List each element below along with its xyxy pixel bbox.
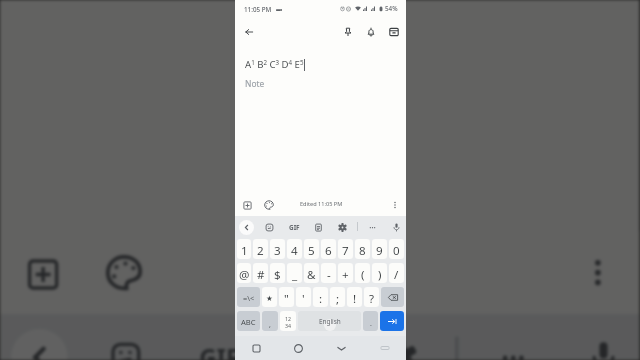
staticText: @	[239, 267, 250, 283]
button[interactable]: /	[389, 263, 404, 283]
staticText: 3	[274, 243, 281, 259]
button[interactable]: =\<	[237, 287, 260, 307]
button[interactable]: Archive	[382, 22, 405, 42]
staticText: #	[257, 267, 265, 283]
button[interactable]: :	[313, 287, 328, 307]
button[interactable]: .	[363, 311, 378, 331]
button[interactable]: (	[355, 263, 370, 283]
staticText: !	[353, 291, 357, 307]
button[interactable]: @	[237, 263, 251, 283]
button[interactable]: 0	[389, 239, 404, 259]
button[interactable]: 3	[270, 239, 285, 259]
button[interactable]: ★	[262, 287, 277, 307]
button[interactable]: Reminder	[359, 22, 382, 42]
button[interactable]: 6	[321, 239, 336, 259]
button[interactable]: Back	[241, 24, 257, 40]
button[interactable]: Add	[239, 197, 255, 213]
button[interactable]: !	[347, 287, 362, 307]
button[interactable]: Backspace	[381, 287, 404, 307]
button[interactable]: More	[481, 325, 541, 360]
button[interactable]: Home	[277, 336, 320, 360]
button[interactable]: Clipboard	[310, 219, 326, 235]
button[interactable]: Clipboard	[278, 325, 338, 360]
button[interactable]: ABC	[237, 311, 260, 331]
staticText: 1	[241, 243, 248, 259]
staticText: )	[378, 267, 382, 283]
staticText: Edited 11:05 PM	[300, 200, 343, 208]
button[interactable]: '	[296, 287, 311, 307]
staticText: "	[284, 291, 289, 307]
staticText: (	[361, 267, 365, 283]
button[interactable]: Colour	[261, 197, 277, 213]
button[interactable]: Switch keyboard	[363, 336, 406, 360]
staticText: $	[274, 267, 281, 283]
button[interactable]: Settings	[334, 219, 350, 235]
staticText: +	[342, 267, 349, 283]
staticText: 5	[308, 243, 315, 259]
button[interactable]: $	[270, 263, 285, 283]
button[interactable]: More	[364, 219, 380, 235]
button[interactable]: "	[279, 287, 294, 307]
staticText: _	[292, 267, 298, 283]
staticText: ABC	[241, 317, 256, 327]
button[interactable]: )	[372, 263, 387, 283]
staticText: GIF	[289, 223, 300, 232]
staticText: 0	[393, 243, 400, 259]
button[interactable]: Colour	[94, 242, 154, 303]
button[interactable]: Emoji	[94, 325, 154, 360]
staticText: 12	[285, 315, 291, 322]
button[interactable]: 12	[280, 311, 296, 331]
button[interactable]: Pin	[336, 22, 359, 42]
button[interactable]: Enter	[380, 311, 404, 331]
button[interactable]: Voice input	[571, 325, 632, 360]
button[interactable]: Hide keyboard	[320, 336, 363, 360]
staticText: '	[302, 291, 305, 307]
button[interactable]: #	[253, 263, 268, 283]
button[interactable]: -	[321, 263, 336, 283]
button[interactable]: +	[338, 263, 353, 283]
staticText: 34	[285, 322, 291, 329]
button[interactable]: Settings	[368, 325, 429, 360]
staticText: Edited 11:05 PM	[241, 254, 402, 284]
staticText: .	[370, 319, 372, 329]
button[interactable]: 2	[253, 239, 268, 259]
button[interactable]: ;	[330, 287, 345, 307]
staticText: English	[319, 317, 341, 326]
button[interactable]: English	[298, 311, 361, 331]
button[interactable]: Back	[239, 220, 254, 235]
staticText: 8	[359, 243, 366, 259]
button[interactable]: GIF	[286, 219, 302, 235]
staticText: ;	[336, 291, 340, 307]
staticText: 4	[291, 243, 298, 259]
button[interactable]: More options	[387, 197, 403, 213]
staticText: GIF	[199, 340, 241, 360]
staticText: ★	[266, 294, 273, 303]
button[interactable]: Recents	[235, 336, 277, 360]
button[interactable]: 1	[237, 239, 251, 259]
staticText: ,	[269, 320, 271, 330]
staticText: -	[327, 267, 331, 283]
staticText: Note	[245, 78, 265, 89]
button[interactable]: ?	[364, 287, 379, 307]
button[interactable]: 5	[304, 239, 319, 259]
button[interactable]: More options	[568, 242, 628, 303]
staticText: 6	[325, 243, 332, 259]
button[interactable]: Emoji	[261, 219, 277, 235]
button[interactable]: Voice input	[388, 219, 404, 235]
button[interactable]: Add	[11, 242, 71, 303]
button[interactable]: 4	[287, 239, 302, 259]
button[interactable]: Back	[11, 329, 68, 360]
staticText: /	[394, 267, 399, 283]
button[interactable]: &	[304, 263, 319, 283]
button[interactable]: 7	[338, 239, 353, 259]
button[interactable]: 9	[372, 239, 387, 259]
button[interactable]: _	[287, 263, 302, 283]
staticText: =\<	[243, 293, 255, 303]
staticText: 54%	[385, 4, 398, 13]
staticText: :	[319, 291, 323, 307]
button[interactable]: 8	[355, 239, 370, 259]
button[interactable]: GIF	[188, 325, 248, 360]
staticText: A1 B2 C3 D4 E5	[245, 58, 304, 71]
button[interactable]: ,	[262, 311, 278, 331]
staticText: 2	[257, 243, 264, 259]
